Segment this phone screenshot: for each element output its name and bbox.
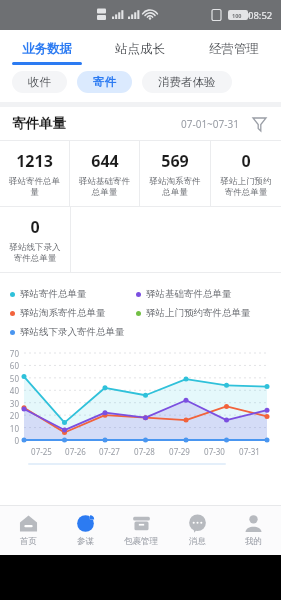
button[interactable]: 消息 [169,506,225,555]
staticText: 驿站上门预约寄件总单量 [146,307,251,319]
staticText: 70 [0,348,19,359]
staticText: 07-26 [65,446,86,457]
button[interactable]: 参谋 [57,506,113,555]
button[interactable]: 消费者体验 [142,71,232,93]
staticText: 经营管理 [209,41,259,57]
staticText: 07-29 [169,446,190,457]
button[interactable]: 包裹管理 [113,506,169,555]
button[interactable]: 我的 [225,506,281,555]
staticText: 包裹管理 [124,536,158,547]
staticText: 07-31 [239,446,260,457]
staticText: 10 [0,423,19,434]
staticText: 寄件 [93,75,116,89]
staticText: 07-25 [31,446,52,457]
button[interactable]: 寄件 [77,71,132,93]
staticText: 驿站淘系寄件 总单量 [142,176,208,198]
button[interactable]: 站点成长 [93,30,187,67]
button[interactable]: 经营管理 [187,30,281,67]
staticText: 驿站基础寄件 总单量 [72,176,137,198]
button[interactable]: 驿站上门预约寄件总单量 [136,307,275,319]
staticText: 驿站基础寄件总单量 [146,288,232,300]
staticText: 0 [241,150,251,172]
staticText: 业务数据 [22,41,72,57]
staticText: 1213 [16,150,53,172]
staticText: 07-27 [99,446,120,457]
button[interactable]: 0 [211,141,281,206]
staticText: 驿站寄件总单量 [20,288,87,300]
staticText: 50 [0,373,19,384]
staticText: 消息 [189,536,206,547]
staticText: 20 [0,410,19,421]
staticText: 驿站上门预约 寄件总单量 [213,176,279,198]
staticText: 08:52 [248,9,273,22]
staticText: 100 [232,12,242,19]
staticText: 30 [0,398,19,409]
staticText: 07-30 [204,446,225,457]
staticText: 驿站淘系寄件总单量 [20,307,106,319]
button[interactable]: 驿站淘系寄件总单量 [10,307,136,319]
staticText: 我的 [245,536,262,547]
button[interactable]: 驿站线下录入寄件总单量 [10,326,136,338]
staticText: 40 [0,385,19,396]
staticText: 寄件单量 [12,115,66,132]
staticText: 参谋 [77,536,94,547]
button[interactable]: 0 [0,207,70,272]
button[interactable]: 收件 [12,71,67,93]
button[interactable]: 644 [70,141,139,206]
staticText: 0 [0,435,19,446]
staticText: 驿站线下录入 寄件总单量 [2,242,68,264]
staticText: 569 [161,150,189,172]
staticText: 07-28 [134,446,155,457]
button[interactable]: 驿站基础寄件总单量 [136,288,275,300]
staticText: 0 [30,216,40,238]
staticText: 644 [91,150,119,172]
staticText: 收件 [28,75,51,89]
staticText: 驿站寄件总单 量 [2,176,67,198]
staticText: 07-01~07-31 [181,117,239,131]
button[interactable]: 筛选 [249,114,269,134]
staticText: 首页 [20,536,37,547]
button[interactable]: 驿站寄件总单量 [10,288,136,300]
staticText: 60 [0,360,19,371]
button[interactable]: 首页 [0,506,57,555]
button[interactable]: 业务数据 [0,30,93,67]
staticText: 站点成长 [115,41,165,57]
staticText: 消费者体验 [158,75,216,89]
button[interactable]: 1213 [0,141,69,206]
staticText: 驿站线下录入寄件总单量 [20,326,125,338]
button[interactable]: 569 [140,141,210,206]
